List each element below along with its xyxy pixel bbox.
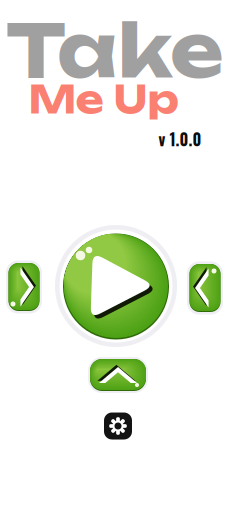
button[interactable]: Back [185,259,225,317]
button[interactable]: Settings [101,409,135,443]
staticText: Me Up [28,75,179,123]
button[interactable]: Play [52,222,180,350]
button[interactable]: Up [85,354,151,396]
button[interactable]: Forward [4,258,44,316]
staticText: Take [6,4,224,95]
staticText: v 1.0.0 [158,127,201,151]
